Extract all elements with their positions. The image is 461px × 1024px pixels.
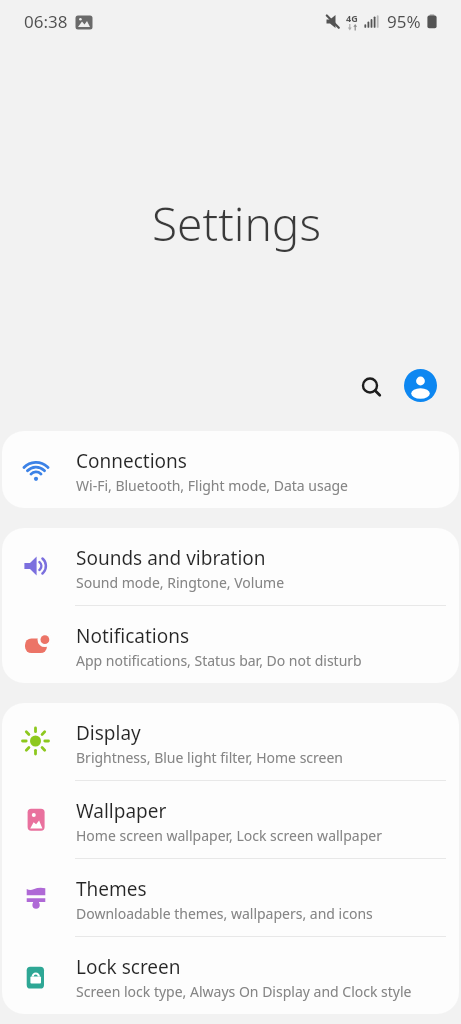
button[interactable]: Notifications [2, 606, 459, 683]
staticText: Themes [76, 876, 147, 902]
button[interactable]: Connections [2, 431, 459, 508]
staticText: Brightness, Blue light filter, Home scre… [76, 748, 344, 767]
staticText: Wallpaper [76, 798, 167, 824]
button[interactable]: Lock screen [2, 937, 459, 1014]
staticText: Notifications [76, 623, 190, 649]
button[interactable]: Display [2, 703, 459, 780]
staticText: Downloadable themes, wallpapers, and ico… [76, 904, 373, 923]
staticText: Sounds and vibration [76, 545, 266, 571]
staticText: 95% [387, 10, 421, 33]
staticText: Wi-Fi, Bluetooth, Flight mode, Data usag… [76, 476, 349, 495]
staticText: App notifications, Status bar, Do not di… [76, 651, 362, 670]
button[interactable]: Sounds and vibration [2, 528, 459, 605]
button[interactable] [354, 368, 388, 402]
staticText: Screen lock type, Always On Display and … [76, 982, 412, 1001]
staticText: 06:38 [24, 10, 68, 33]
button[interactable] [404, 369, 437, 402]
button[interactable]: Themes [2, 859, 459, 936]
staticText: Display [76, 720, 141, 746]
staticText: 4G [346, 12, 358, 24]
staticText: Settings [152, 192, 321, 255]
staticText: Connections [76, 448, 187, 474]
button[interactable]: Wallpaper [2, 781, 459, 858]
staticText: Sound mode, Ringtone, Volume [76, 573, 285, 592]
staticText: Lock screen [76, 954, 181, 980]
staticText: Home screen wallpaper, Lock screen wallp… [76, 826, 382, 845]
